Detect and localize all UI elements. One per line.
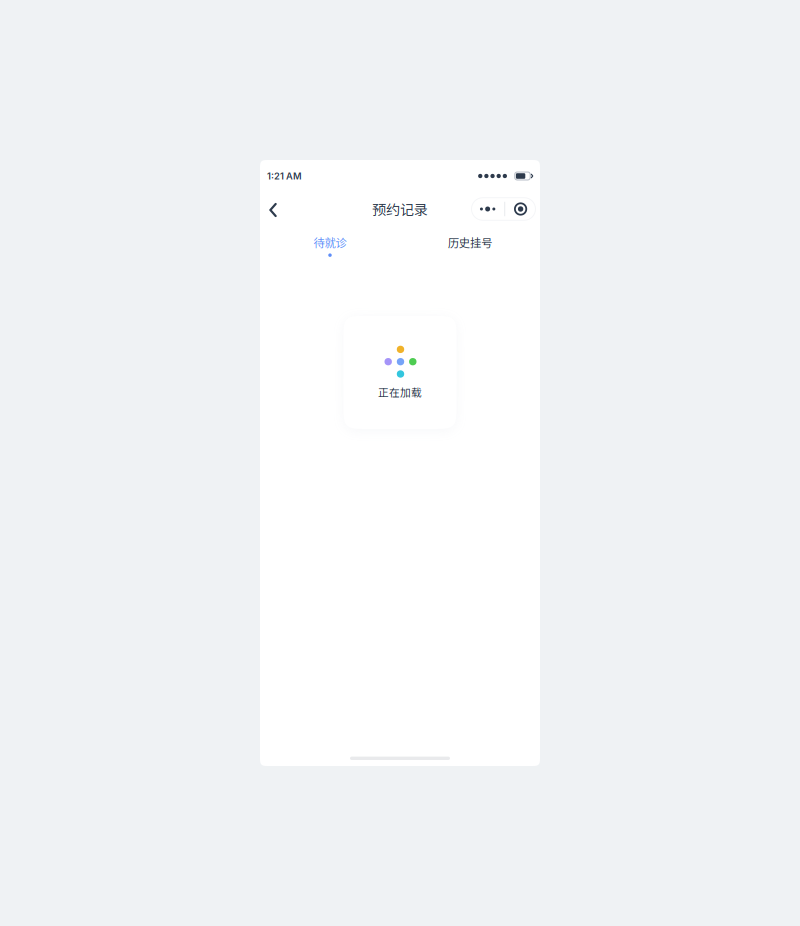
button[interactable]: 待就诊 <box>260 226 400 261</box>
staticText: 预约记录 <box>372 199 428 219</box>
button[interactable]: 历史挂号 <box>400 226 540 261</box>
button[interactable]: Menu <box>471 197 536 221</box>
staticText: 历史挂号 <box>448 234 492 250</box>
button[interactable]: Back <box>262 195 286 223</box>
staticText: 待就诊 <box>313 234 346 250</box>
staticText: 1:21 AM <box>267 170 302 182</box>
staticText: 正在加载 <box>378 384 422 400</box>
